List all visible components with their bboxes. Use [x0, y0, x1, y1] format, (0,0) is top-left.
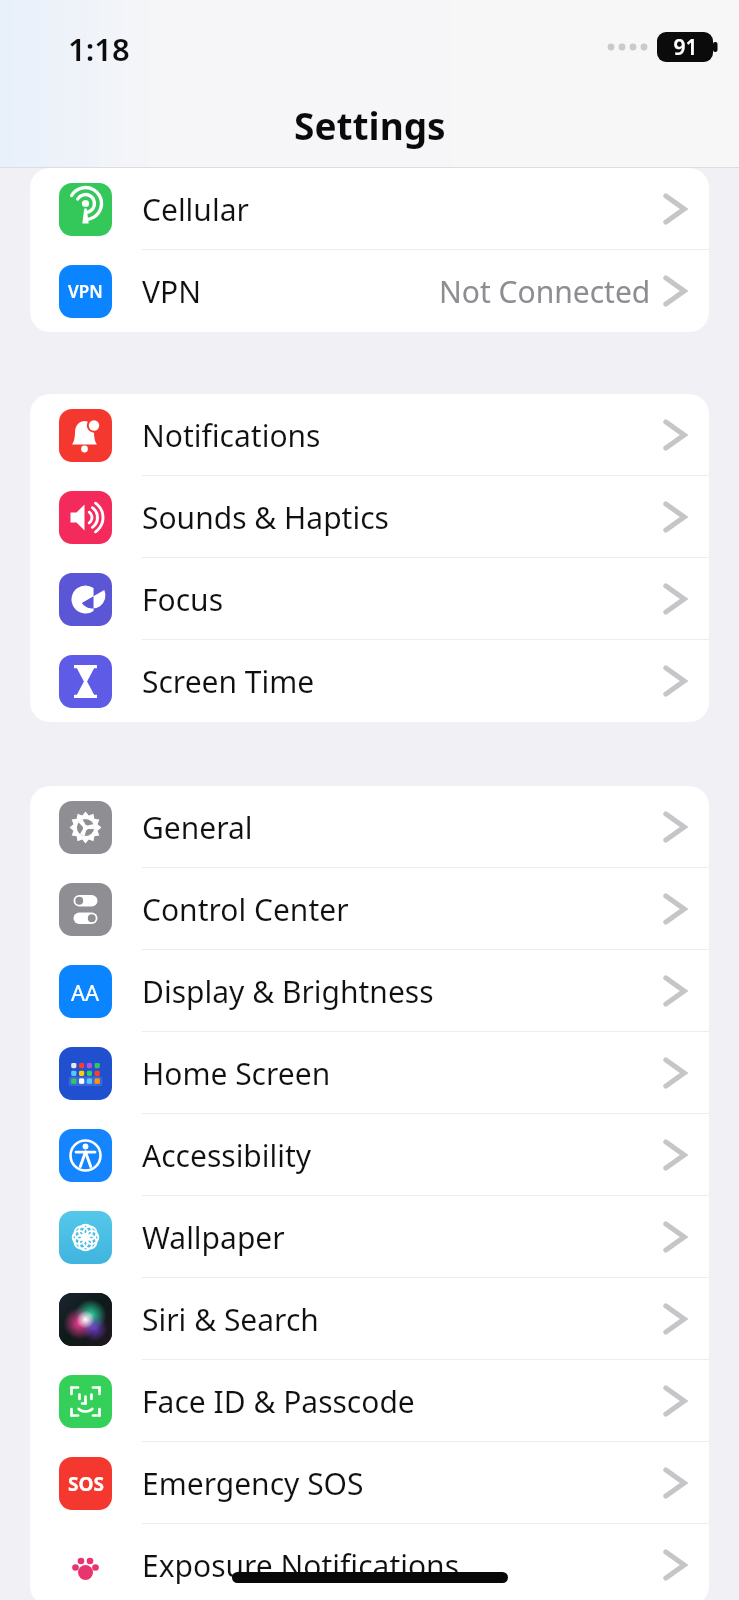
button[interactable]: Cellular	[30, 168, 709, 250]
staticText: Notifications	[142, 415, 321, 456]
button[interactable]: Face ID & Passcode	[30, 1360, 709, 1442]
button[interactable]: Accessibility	[30, 1114, 709, 1196]
staticText: Siri & Search	[142, 1299, 319, 1340]
staticText: AA	[71, 977, 100, 1007]
button[interactable]: Exposure Notifications	[30, 1524, 709, 1600]
staticText: Emergency SOS	[142, 1463, 364, 1504]
button[interactable]: SOS	[30, 1442, 709, 1524]
staticText: Exposure Notifications	[142, 1545, 460, 1586]
staticText: Settings	[294, 100, 446, 150]
staticText: Face ID & Passcode	[142, 1381, 415, 1422]
staticText: Wallpaper	[142, 1217, 285, 1258]
button[interactable]: Wallpaper	[30, 1196, 709, 1278]
staticText: General	[142, 807, 253, 848]
staticText: Sounds & Haptics	[142, 497, 389, 538]
button[interactable]: Notifications	[30, 394, 709, 476]
button[interactable]: Home Screen	[30, 1032, 709, 1114]
button[interactable]: General	[30, 786, 709, 868]
button[interactable]: VPN	[30, 250, 709, 332]
staticText: Cellular	[142, 189, 249, 230]
staticText: Focus	[142, 579, 224, 620]
button[interactable]: Focus	[30, 558, 709, 640]
staticText: SOS	[68, 1471, 104, 1497]
button[interactable]: Control Center	[30, 868, 709, 950]
staticText: 91	[673, 33, 698, 62]
staticText: Screen Time	[142, 661, 315, 702]
staticText: Not Connected	[439, 271, 651, 312]
staticText: Home Screen	[142, 1053, 331, 1094]
staticText: VPN	[68, 280, 103, 303]
staticText: Display & Brightness	[142, 971, 434, 1012]
button[interactable]: AA	[30, 950, 709, 1032]
staticText: Control Center	[142, 889, 349, 930]
button[interactable]: Sounds & Haptics	[30, 476, 709, 558]
staticText: VPN	[142, 271, 201, 312]
button[interactable]: Screen Time	[30, 640, 709, 722]
staticText: Accessibility	[142, 1135, 312, 1176]
staticText: 1:18	[68, 28, 130, 70]
button[interactable]: Siri & Search	[30, 1278, 709, 1360]
